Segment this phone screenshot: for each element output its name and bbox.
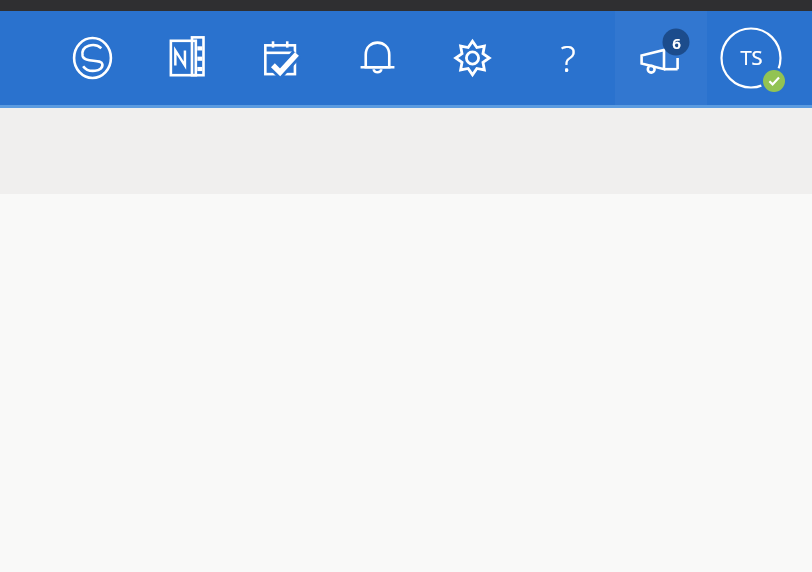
staticText: 6	[672, 33, 681, 53]
button[interactable]: Account manager for TS	[707, 11, 795, 105]
button[interactable]: Skype for Business	[45, 11, 140, 105]
button[interactable]: Help	[520, 11, 615, 105]
button[interactable]: Notifications	[330, 11, 425, 105]
button[interactable]: Announcements, 6 new	[615, 11, 707, 105]
button[interactable]: Settings	[425, 11, 520, 105]
staticText: ?	[560, 34, 576, 83]
button[interactable]: OneNote	[140, 11, 235, 105]
staticText: TS	[740, 44, 763, 71]
button[interactable]: Tasks	[235, 11, 330, 105]
